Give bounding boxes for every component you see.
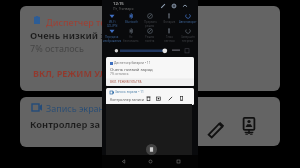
staticText: энергии [182, 39, 194, 43]
button[interactable]: Режим [141, 28, 159, 43]
button[interactable]: Record [146, 144, 157, 155]
button[interactable]: Home [143, 155, 157, 168]
staticText: беспокоить [123, 39, 139, 43]
staticText: Режим [145, 35, 155, 39]
button[interactable]: Прервать [141, 13, 159, 28]
staticText: ВКЛ, РЕЖИМ УЛ [33, 67, 104, 79]
button[interactable]: Screenshot [155, 95, 162, 102]
button[interactable]: Edit [198, 97, 280, 146]
button[interactable]: Draw [167, 95, 174, 102]
button[interactable] [198, 6, 280, 91]
staticText: изображения [103, 39, 121, 43]
button[interactable]: Не [122, 28, 140, 43]
button[interactable]: Edit tiles [158, 1, 168, 11]
staticText: Контроллер записи [110, 97, 144, 102]
staticText: Тема [166, 35, 173, 39]
button[interactable]: Фонарик [160, 13, 178, 24]
button[interactable]: Запись экрана • 11 [106, 88, 194, 105]
button[interactable]: Stop recording [145, 95, 152, 102]
button[interactable]: Edit [207, 120, 225, 138]
staticText: Автоповорот [179, 20, 197, 24]
button[interactable]: Contact card [239, 116, 259, 136]
button[interactable]: Диспетчер батареи • 11 [106, 57, 194, 86]
staticText: Не [129, 35, 133, 39]
button[interactable]: Передача [103, 28, 121, 43]
staticText: Очень низкий заряд [110, 66, 153, 72]
button[interactable]: Back [116, 155, 130, 168]
staticText: Wi-Fi [109, 20, 116, 24]
staticText: 12:15 [113, 1, 124, 7]
button[interactable]: Автоповорот [179, 13, 197, 24]
staticText: полёта [145, 39, 155, 43]
staticText: Диспетчер те [46, 16, 104, 28]
staticText: Передача [105, 35, 119, 39]
button[interactable]: Завершён [179, 28, 197, 43]
button[interactable] [106, 47, 194, 54]
button[interactable]: Collapse [180, 1, 190, 11]
staticText: светлая [164, 39, 175, 43]
staticText: Завершён [181, 35, 195, 39]
staticText: 7% осталось [30, 42, 84, 54]
staticText: ВКЛ. РЕЖИМ УЛЬТРА [110, 80, 142, 84]
button[interactable]: Settings [169, 1, 179, 11]
staticText: Очень низкий за [30, 29, 104, 42]
staticText: Bluetooth [125, 20, 138, 24]
staticText: Запись экран [46, 102, 104, 114]
button[interactable]: Запись экран [20, 97, 104, 147]
button[interactable]: Bluetooth [122, 13, 140, 24]
staticText: Контроллер за [30, 118, 101, 131]
staticText: Фонарик [163, 20, 176, 24]
staticText: Запись экрана • 11 [115, 90, 144, 94]
button[interactable]: Wi-Fi [103, 13, 121, 28]
staticText: IZILVPN [107, 24, 118, 28]
staticText: Диспетчер батареи • 11 [114, 61, 151, 65]
button[interactable]: Тема [160, 28, 178, 43]
staticText: 7% осталось [110, 72, 129, 76]
button[interactable]: Диспетчер те [20, 6, 104, 91]
staticText: режим [145, 24, 155, 28]
staticText: Прервать [144, 20, 157, 24]
button[interactable]: Recents [171, 155, 185, 168]
staticText: Пт, 9 января [113, 6, 134, 11]
button[interactable]: Device [178, 95, 185, 102]
